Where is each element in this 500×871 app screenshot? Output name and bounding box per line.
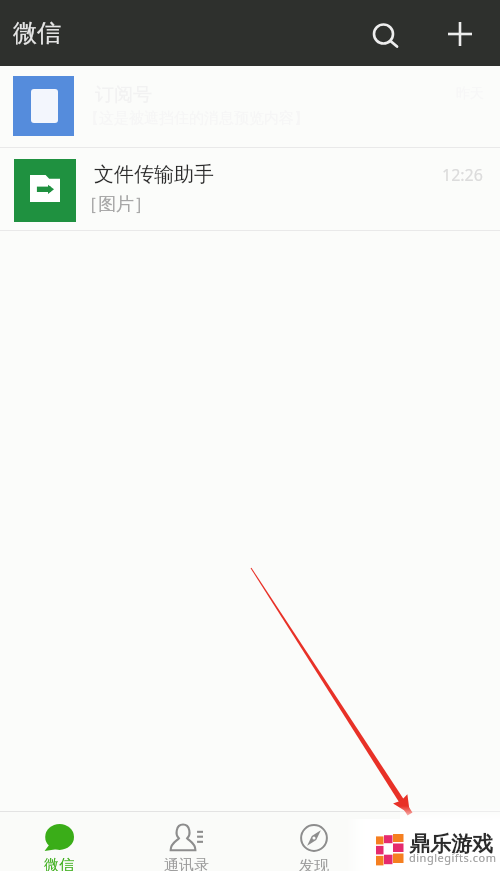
button[interactable]: 文件传输助手 — [0, 148, 500, 230]
staticText: 微信 — [13, 18, 61, 48]
button[interactable]: Add — [434, 0, 486, 66]
staticText: dinglegifts.com — [409, 850, 497, 865]
button[interactable]: 通讯录 — [134, 812, 238, 871]
staticText: 微信 — [44, 856, 74, 871]
button[interactable]: 微信 — [7, 812, 111, 871]
staticText: 通讯录 — [164, 856, 209, 871]
staticText: 我 — [433, 856, 448, 871]
button[interactable]: 订阅号 — [0, 66, 500, 148]
button[interactable]: 我 — [388, 812, 492, 871]
button[interactable]: Search — [357, 0, 409, 66]
staticText: 订阅号 — [95, 83, 152, 107]
staticText: ［图片］ — [80, 193, 152, 216]
staticText: 文件传输助手 — [94, 162, 214, 187]
staticText: 12:26 — [442, 164, 483, 186]
staticText: 发现 — [299, 857, 329, 871]
staticText: 鼎乐游戏 — [409, 831, 493, 857]
button[interactable]: 发现 — [262, 812, 366, 871]
